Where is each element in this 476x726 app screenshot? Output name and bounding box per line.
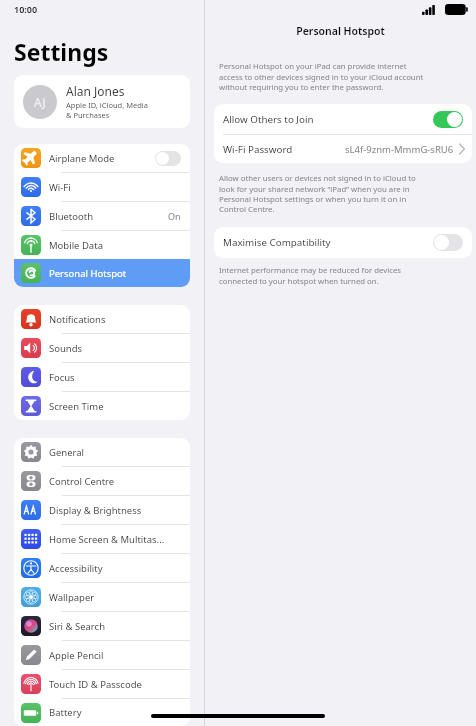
staticText: Allow Others to Join [223, 113, 314, 126]
button[interactable]: AJ [14, 75, 190, 128]
button[interactable]: Wi-Fi Password [214, 135, 472, 163]
button[interactable]: Toggle off [155, 151, 181, 166]
staticText: Maximise Compatibility [223, 236, 331, 249]
button[interactable]: Siri & Search [14, 612, 190, 640]
staticText: Personal Hotspot on your iPad can provid… [219, 61, 424, 93]
staticText: Screen Time [49, 400, 104, 413]
staticText: Wallpaper [49, 591, 95, 604]
button[interactable]: Apple Pencil [14, 641, 190, 669]
staticText: Allow other users or devices not signed … [219, 173, 416, 215]
button[interactable]: Wallpaper [14, 583, 190, 611]
staticText: Personal Hotspot [205, 24, 476, 38]
staticText: Airplane Mode [49, 152, 115, 165]
staticText: Wi-Fi Password [223, 143, 293, 156]
button[interactable]: General [14, 438, 190, 466]
staticText: Apple ID, iCloud, Media & Purchases [66, 100, 148, 120]
button[interactable]: Airplane Mode [14, 144, 190, 172]
staticText: Focus [49, 371, 75, 384]
staticText: 10:00 [14, 3, 38, 15]
button[interactable]: Mobile Data [14, 231, 190, 259]
staticText: Accessibility [49, 562, 103, 575]
staticText: Alan Jones [66, 83, 125, 99]
button[interactable]: Toggle on [433, 111, 463, 128]
staticText: Home Screen & Multitas... [49, 533, 165, 546]
button[interactable]: Battery [14, 699, 190, 726]
staticText: Battery [49, 706, 82, 719]
button[interactable]: Personal Hotspot [14, 259, 190, 287]
button[interactable]: Home Screen & Multitas... [14, 525, 190, 553]
staticText: Touch ID & Passcode [49, 678, 142, 691]
staticText: Siri & Search [49, 620, 106, 633]
button[interactable]: Control Centre [14, 467, 190, 495]
staticText: Display & Brightness [49, 504, 142, 517]
button[interactable]: Maximise Compatibility [214, 227, 472, 258]
button[interactable]: Touch ID & Passcode [14, 670, 190, 698]
button[interactable]: Bluetooth [14, 202, 190, 230]
staticText: Personal Hotspot [49, 267, 127, 280]
staticText: Notifications [49, 313, 106, 326]
staticText: Bluetooth [49, 210, 94, 223]
button[interactable]: Toggle off [433, 234, 463, 251]
staticText: Apple Pencil [49, 649, 104, 662]
staticText: General [49, 446, 85, 459]
staticText: Mobile Data [49, 239, 103, 252]
button[interactable]: Sounds [14, 334, 190, 362]
staticText: Settings [14, 36, 109, 67]
staticText: Wi-Fi [49, 181, 71, 194]
button[interactable]: Allow Others to Join [214, 104, 472, 134]
button[interactable]: Display & Brightness [14, 496, 190, 524]
staticText: On [168, 210, 181, 222]
staticText: Control Centre [49, 475, 115, 488]
staticText: sL4f-9znm-MmmG-sRU6 [345, 143, 454, 156]
button[interactable]: Notifications [14, 305, 190, 333]
button[interactable]: Wi-Fi [14, 173, 190, 201]
staticText: Sounds [49, 342, 83, 355]
staticText: AJ [34, 94, 46, 110]
staticText: Internet performance may be reduced for … [219, 265, 402, 287]
button[interactable]: Focus [14, 363, 190, 391]
button[interactable]: Accessibility [14, 554, 190, 582]
button[interactable]: Screen Time [14, 392, 190, 420]
